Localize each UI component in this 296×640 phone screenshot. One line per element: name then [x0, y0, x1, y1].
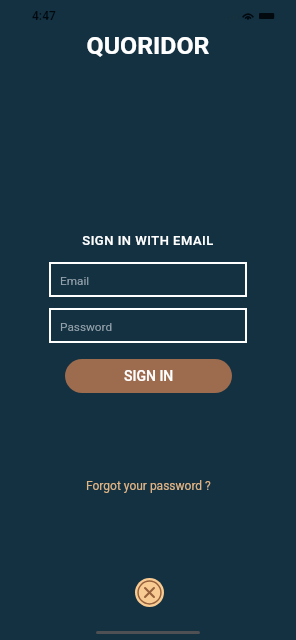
staticText: 4:47 — [32, 9, 56, 23]
staticText: Email — [60, 274, 90, 288]
button[interactable]: SIGN IN — [65, 359, 232, 393]
staticText: SIGN IN WITH EMAIL — [0, 233, 296, 248]
staticText: SIGN IN — [124, 368, 174, 384]
button[interactable]: Password — [49, 308, 247, 343]
button[interactable]: Email — [49, 262, 247, 297]
staticText: Password — [60, 320, 113, 334]
button[interactable]: Close — [135, 578, 164, 607]
staticText: Forgot your password ? — [86, 479, 211, 493]
button[interactable]: Forgot your password ? — [82, 477, 215, 495]
staticText: QUORIDOR — [0, 31, 296, 60]
